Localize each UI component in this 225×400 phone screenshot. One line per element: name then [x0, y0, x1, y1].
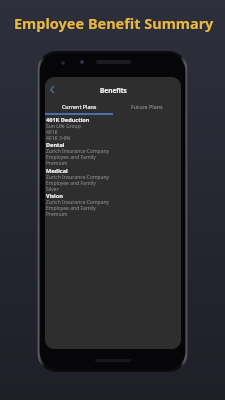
staticText: Future Plans: [131, 103, 163, 110]
staticText: Medical: [46, 167, 68, 175]
staticText: Sun Life Group: [46, 123, 81, 130]
button[interactable]: Future Plans: [113, 102, 181, 115]
staticText: Dental: [46, 141, 65, 149]
staticText: Zurich Insurance Company: [46, 199, 110, 206]
staticText: Employee and Family: [46, 205, 96, 212]
staticText: 401K Deduction: [46, 116, 90, 124]
staticText: Employee and Family: [46, 180, 96, 187]
button[interactable]: Vision: [45, 192, 181, 218]
staticText: Premium: [46, 211, 68, 218]
staticText: Premium: [46, 160, 68, 167]
staticText: Vision: [46, 192, 63, 200]
staticText: 401K: [46, 129, 58, 136]
button[interactable]: Medical: [45, 167, 181, 193]
button[interactable]: Dental: [45, 141, 181, 167]
staticText: Employee and Family: [46, 154, 96, 161]
staticText: Employee Benefit Summary: [14, 13, 214, 33]
button[interactable]: 401K Deduction: [45, 116, 181, 142]
staticText: 401K 3-6%: [46, 135, 71, 142]
staticText: Zurich Insurance Company: [46, 174, 110, 181]
staticText: Zurich Insurance Company: [46, 148, 110, 155]
staticText: Current Plans: [62, 103, 97, 110]
staticText: Silver: [46, 186, 59, 193]
button[interactable]: Back: [45, 81, 60, 98]
staticText: Benefits: [100, 86, 127, 95]
button[interactable]: Current Plans: [45, 102, 113, 115]
